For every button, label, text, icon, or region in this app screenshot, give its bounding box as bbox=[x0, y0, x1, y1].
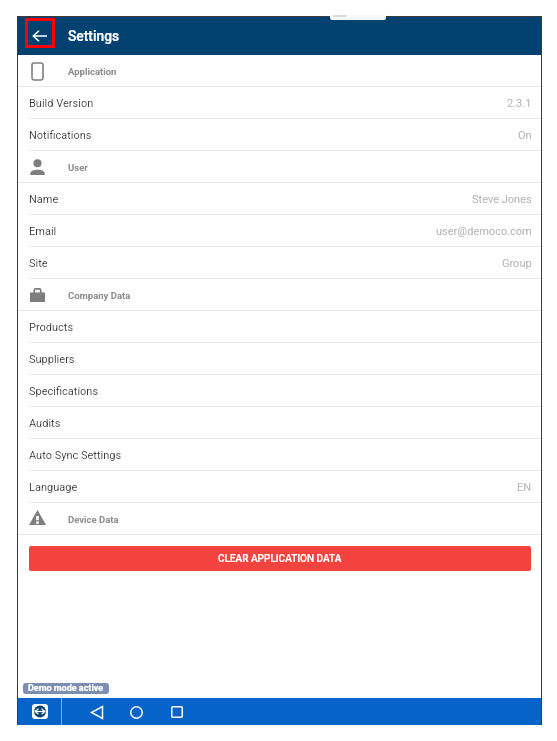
button[interactable]: Language bbox=[17, 471, 542, 503]
staticText: User bbox=[68, 162, 88, 173]
staticText: Auto Sync Settings bbox=[29, 449, 122, 462]
button[interactable]: Notifications bbox=[17, 119, 542, 151]
staticText: Application bbox=[68, 66, 117, 77]
button[interactable]: Accessibility shortcut bbox=[32, 704, 48, 719]
staticText: Name bbox=[29, 193, 59, 206]
staticText: Language bbox=[29, 481, 78, 494]
button[interactable]: Audits bbox=[17, 407, 542, 439]
button[interactable]: Name bbox=[17, 183, 542, 215]
button[interactable]: Email bbox=[17, 215, 542, 247]
button[interactable]: Build Version bbox=[17, 87, 542, 119]
button[interactable]: Device Data bbox=[17, 503, 542, 535]
staticText: On bbox=[518, 129, 532, 142]
staticText: Device Data bbox=[68, 514, 119, 525]
staticText: Build Version bbox=[29, 97, 94, 110]
button[interactable]: Auto Sync Settings bbox=[17, 439, 542, 471]
button[interactable]: Back bbox=[25, 21, 55, 51]
staticText: user@democo.com bbox=[436, 225, 532, 238]
staticText: Settings bbox=[68, 28, 120, 44]
staticText: Company Data bbox=[68, 290, 131, 301]
staticText: Group bbox=[502, 257, 532, 270]
button[interactable]: Site bbox=[17, 247, 542, 279]
button[interactable]: CLEAR APPLICATION DATA bbox=[29, 546, 531, 571]
button[interactable]: Suppliers bbox=[17, 343, 542, 375]
button[interactable]: Specifications bbox=[17, 375, 542, 407]
staticText: Site bbox=[29, 257, 48, 270]
button[interactable]: User bbox=[17, 151, 542, 183]
staticText: EN bbox=[517, 481, 532, 494]
button[interactable]: Products bbox=[17, 311, 542, 343]
button[interactable]: Home bbox=[119, 700, 154, 724]
button[interactable]: Back bbox=[79, 700, 114, 724]
staticText: Notifications bbox=[29, 129, 92, 142]
staticText: Email bbox=[29, 225, 57, 238]
staticText: Audits bbox=[29, 417, 61, 430]
staticText: Steve Jones bbox=[472, 193, 532, 206]
staticText: CLEAR APPLICATION DATA bbox=[218, 553, 342, 565]
staticText: Suppliers bbox=[29, 353, 75, 366]
staticText: 2.3.1 bbox=[507, 97, 532, 110]
button[interactable]: Recent apps bbox=[159, 700, 194, 724]
staticText: Specifications bbox=[29, 385, 99, 398]
staticText: Products bbox=[29, 321, 74, 334]
button[interactable]: Application bbox=[17, 55, 542, 87]
button[interactable]: Company Data bbox=[17, 279, 542, 311]
staticText: Demo mode active bbox=[28, 683, 104, 694]
